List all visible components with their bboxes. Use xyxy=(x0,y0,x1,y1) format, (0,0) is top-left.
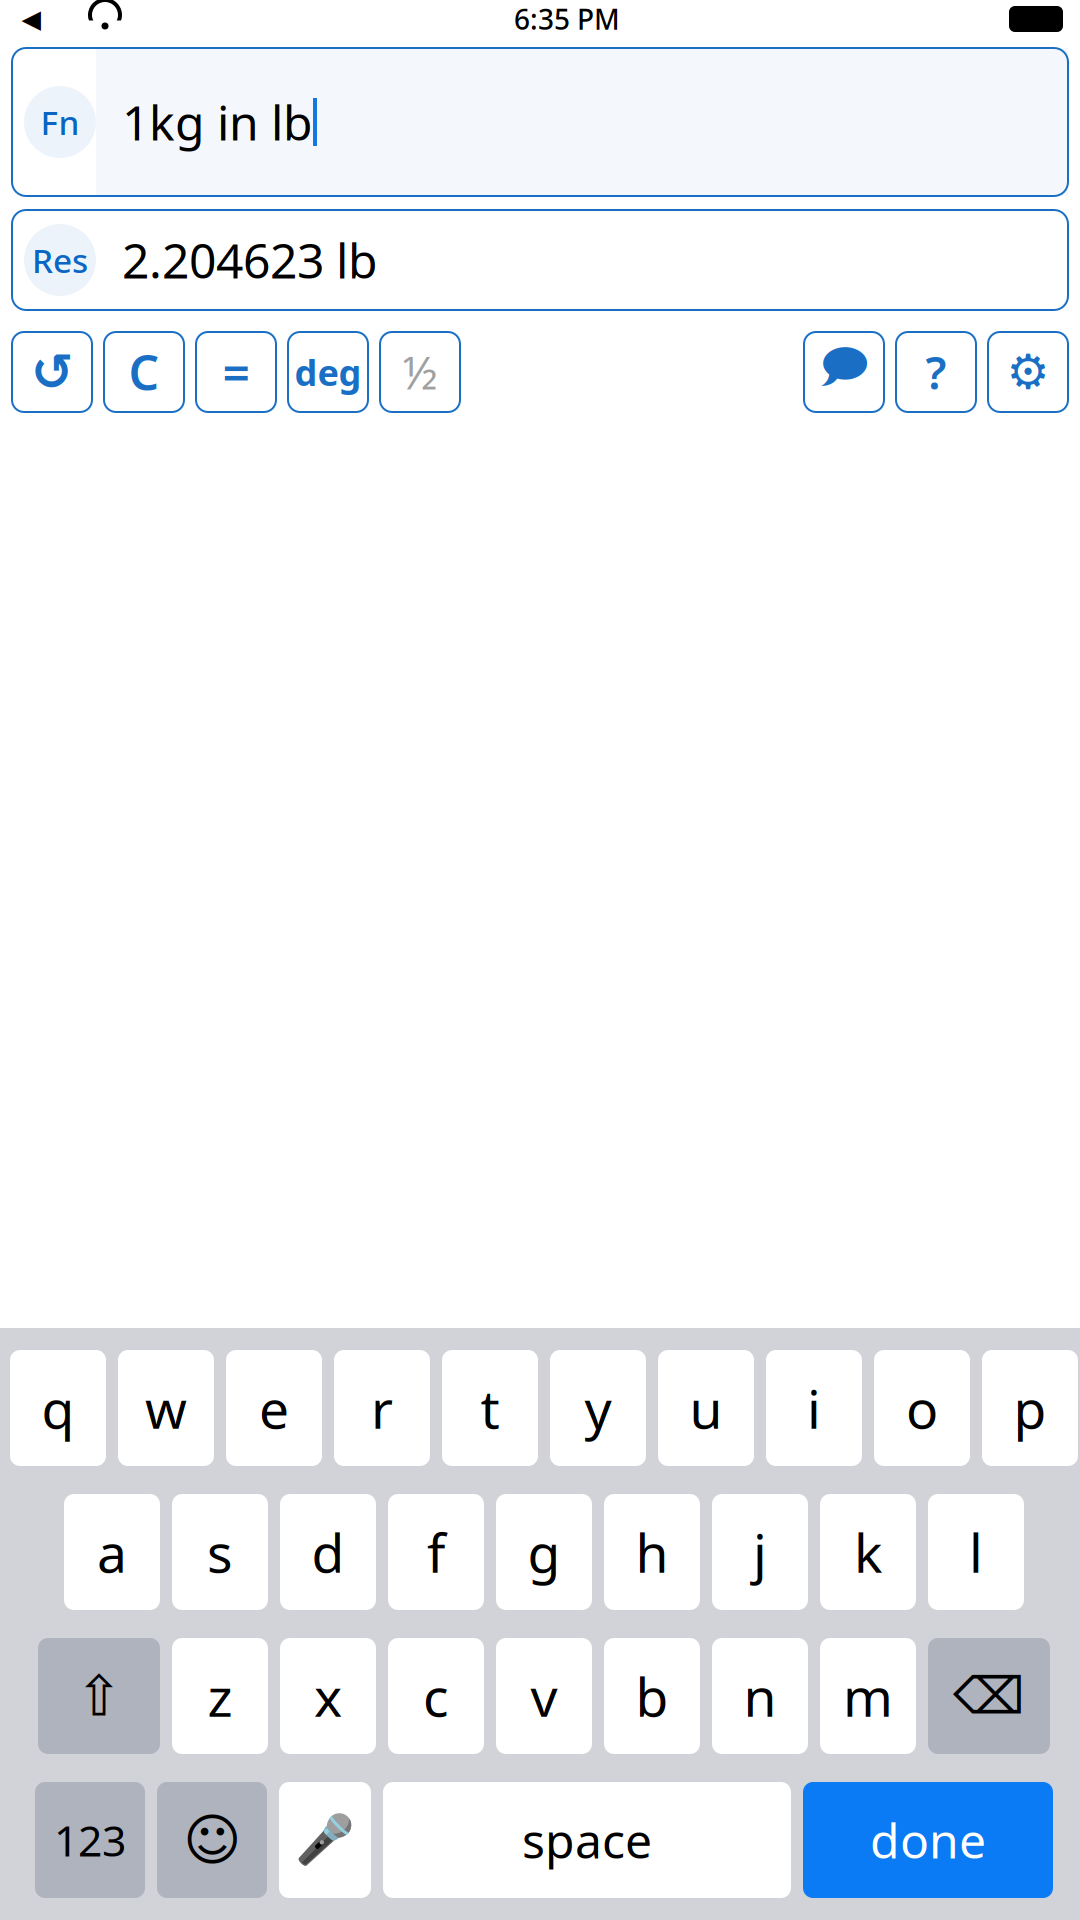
button[interactable]: k xyxy=(820,1494,916,1610)
button[interactable]: Equals xyxy=(196,332,276,412)
staticText: u xyxy=(689,1373,722,1443)
button[interactable]: d xyxy=(280,1494,376,1610)
button[interactable]: Fn xyxy=(12,48,1068,196)
staticText: e xyxy=(259,1373,289,1443)
staticText: f xyxy=(427,1517,445,1587)
button[interactable]: Clear xyxy=(104,332,184,412)
button[interactable]: t xyxy=(442,1350,538,1466)
staticText: ⌫ xyxy=(953,1667,1025,1725)
button[interactable]: o xyxy=(874,1350,970,1466)
button[interactable]: h xyxy=(604,1494,700,1610)
staticText: y xyxy=(584,1373,611,1443)
button[interactable]: u xyxy=(658,1350,754,1466)
button[interactable]: Res xyxy=(12,210,1068,310)
staticText: d xyxy=(311,1517,344,1587)
button[interactable]: q xyxy=(10,1350,106,1466)
button[interactable]: z xyxy=(172,1638,268,1754)
button[interactable]: f xyxy=(388,1494,484,1610)
button[interactable]: g xyxy=(496,1494,592,1610)
staticText: b xyxy=(635,1661,668,1731)
staticText: ⇧ xyxy=(75,1664,122,1728)
button[interactable]: History xyxy=(12,332,92,412)
staticText: k xyxy=(854,1517,882,1587)
staticText: h xyxy=(635,1517,668,1587)
button[interactable]: Settings xyxy=(988,332,1068,412)
staticText: t xyxy=(480,1373,499,1443)
button[interactable]: y xyxy=(550,1350,646,1466)
staticText: 6:35 PM xyxy=(514,0,620,38)
staticText: a xyxy=(97,1517,127,1587)
staticText: space xyxy=(522,1808,652,1872)
staticText: s xyxy=(207,1517,233,1587)
staticText: w xyxy=(145,1373,187,1443)
button[interactable]: Dictate xyxy=(279,1782,371,1898)
staticText: C xyxy=(128,340,159,404)
button[interactable]: x xyxy=(280,1638,376,1754)
button[interactable]: j xyxy=(712,1494,808,1610)
staticText: x xyxy=(314,1661,342,1731)
staticText: j xyxy=(753,1517,767,1587)
staticText: ↺ xyxy=(31,343,73,401)
button[interactable]: Emoji xyxy=(157,1782,267,1898)
staticText: 2.204623 lb xyxy=(122,228,378,292)
staticText: v xyxy=(530,1661,557,1731)
staticText: o xyxy=(906,1373,938,1443)
button[interactable]: m xyxy=(820,1638,916,1754)
button[interactable]: Fraction xyxy=(380,332,460,412)
staticText: r xyxy=(371,1373,393,1443)
staticText: n xyxy=(743,1661,776,1731)
button[interactable]: Help xyxy=(896,332,976,412)
button[interactable]: v xyxy=(496,1638,592,1754)
button[interactable]: 123 xyxy=(35,1782,145,1898)
button[interactable]: n xyxy=(712,1638,808,1754)
button[interactable]: r xyxy=(334,1350,430,1466)
button[interactable]: s xyxy=(172,1494,268,1610)
staticText: i xyxy=(807,1373,821,1443)
staticText: ½ xyxy=(402,342,437,402)
staticText: ◀ xyxy=(21,5,40,33)
button[interactable]: l xyxy=(928,1494,1024,1610)
button[interactable]: done xyxy=(803,1782,1053,1898)
staticText: done xyxy=(870,1808,986,1872)
button[interactable]: i xyxy=(766,1350,862,1466)
staticText: ⚙ xyxy=(1006,345,1049,399)
button[interactable]: Degrees xyxy=(288,332,368,412)
staticText: 🗩 xyxy=(819,334,869,410)
button[interactable]: Shift xyxy=(38,1638,160,1754)
staticText: 1kg in lb xyxy=(122,90,313,154)
staticText: deg xyxy=(294,348,361,396)
button[interactable]: e xyxy=(226,1350,322,1466)
button[interactable]: Feedback xyxy=(804,332,884,412)
staticText: ☺ xyxy=(183,1808,241,1872)
button[interactable]: space xyxy=(383,1782,791,1898)
staticText: Fn xyxy=(40,100,79,144)
staticText: 123 xyxy=(54,1812,126,1868)
staticText: 🎤 xyxy=(295,1813,355,1867)
button[interactable]: Delete xyxy=(928,1638,1050,1754)
staticText: m xyxy=(843,1661,893,1731)
staticText: Res xyxy=(32,238,88,282)
staticText: z xyxy=(207,1661,232,1731)
staticText: q xyxy=(41,1373,74,1443)
staticText: ? xyxy=(925,342,946,402)
staticText: = xyxy=(222,340,249,404)
staticText: p xyxy=(1013,1373,1046,1443)
button[interactable]: c xyxy=(388,1638,484,1754)
staticText: l xyxy=(969,1517,983,1587)
button[interactable]: a xyxy=(64,1494,160,1610)
button[interactable]: p xyxy=(982,1350,1078,1466)
button[interactable]: b xyxy=(604,1638,700,1754)
staticText: c xyxy=(423,1661,449,1731)
button[interactable]: w xyxy=(118,1350,214,1466)
staticText: g xyxy=(527,1517,560,1587)
